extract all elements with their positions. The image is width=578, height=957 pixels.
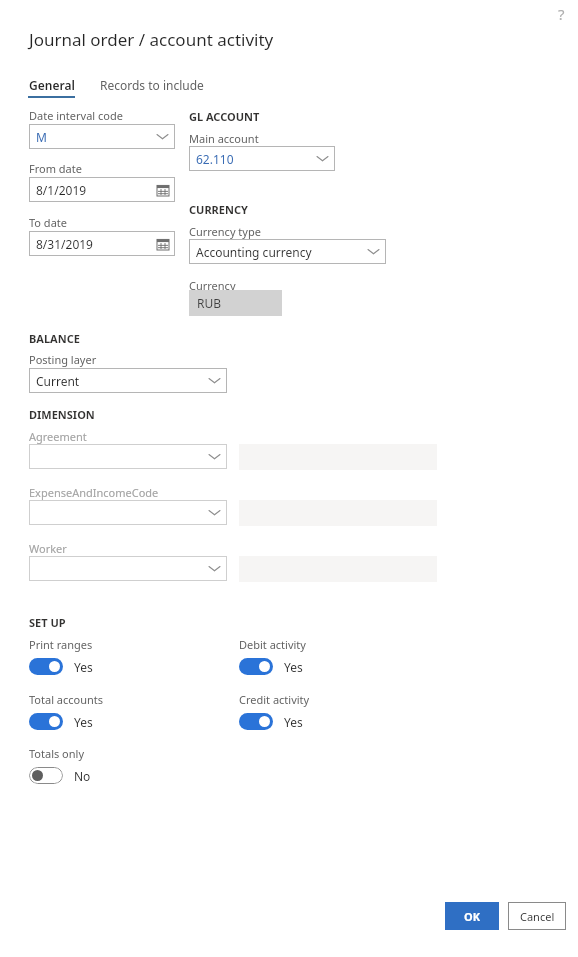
button[interactable]: 8/31/2019 xyxy=(29,231,175,256)
staticText: GL ACCOUNT xyxy=(189,109,260,124)
staticText: 8/1/2019 xyxy=(36,182,87,198)
staticText: 62.110 xyxy=(196,151,234,167)
staticText: 8/31/2019 xyxy=(36,236,93,252)
button[interactable] xyxy=(29,444,227,469)
button[interactable]: Debit activity toggle xyxy=(239,658,273,675)
button[interactable]: M xyxy=(29,124,175,149)
button[interactable]: 62.110 xyxy=(189,146,335,171)
staticText: Accounting currency xyxy=(196,244,312,260)
staticText: Posting layer xyxy=(29,352,97,367)
staticText: Debit activity xyxy=(239,637,306,652)
button[interactable]: Print ranges toggle xyxy=(29,658,63,675)
staticText: ? xyxy=(558,4,565,24)
staticText: Cancel xyxy=(520,909,555,924)
staticText: Yes xyxy=(74,714,93,730)
staticText: Currency xyxy=(189,278,236,293)
staticText: From date xyxy=(29,161,82,176)
staticText: Credit activity xyxy=(239,692,310,707)
other: Open calendar xyxy=(157,184,169,196)
other: Open calendar xyxy=(157,238,169,250)
staticText: Current xyxy=(36,373,80,389)
button[interactable] xyxy=(29,556,227,581)
staticText: Print ranges xyxy=(29,637,93,652)
button[interactable]: Help xyxy=(549,2,573,26)
staticText: Yes xyxy=(284,659,303,675)
staticText: Journal order / account activity xyxy=(29,28,274,51)
staticText: SET UP xyxy=(29,615,66,630)
staticText: To date xyxy=(29,215,67,230)
staticText: Total accounts xyxy=(29,692,104,707)
staticText: Totals only xyxy=(29,746,85,761)
staticText: CURRENCY xyxy=(189,202,248,217)
button[interactable]: OK xyxy=(445,902,499,930)
staticText: Date interval code xyxy=(29,108,123,123)
button[interactable]: Totals only toggle xyxy=(29,767,63,784)
staticText: M xyxy=(36,129,47,145)
button[interactable]: Cancel xyxy=(508,902,566,930)
staticText: General xyxy=(29,77,75,93)
staticText: Yes xyxy=(284,714,303,730)
staticText: Records to include xyxy=(100,77,204,93)
button[interactable]: Records to include xyxy=(95,74,209,96)
staticText: Yes xyxy=(74,659,93,675)
button[interactable]: Accounting currency xyxy=(189,239,386,264)
button[interactable] xyxy=(29,500,227,525)
staticText: Main account xyxy=(189,131,259,146)
button[interactable]: General xyxy=(24,74,80,96)
staticText: DIMENSION xyxy=(29,407,95,422)
staticText: Worker xyxy=(29,541,67,556)
staticText: Currency type xyxy=(189,224,261,239)
button[interactable]: Total accounts toggle xyxy=(29,713,63,730)
button[interactable]: 8/1/2019 xyxy=(29,177,175,202)
staticText: ExpenseAndIncomeCode xyxy=(29,485,159,500)
button[interactable]: Current xyxy=(29,368,227,393)
staticText: OK xyxy=(464,909,481,924)
staticText: No xyxy=(74,768,91,784)
staticText: Agreement xyxy=(29,429,87,444)
button[interactable]: Credit activity toggle xyxy=(239,713,273,730)
staticText: RUB xyxy=(197,295,222,311)
staticText: BALANCE xyxy=(29,331,80,346)
